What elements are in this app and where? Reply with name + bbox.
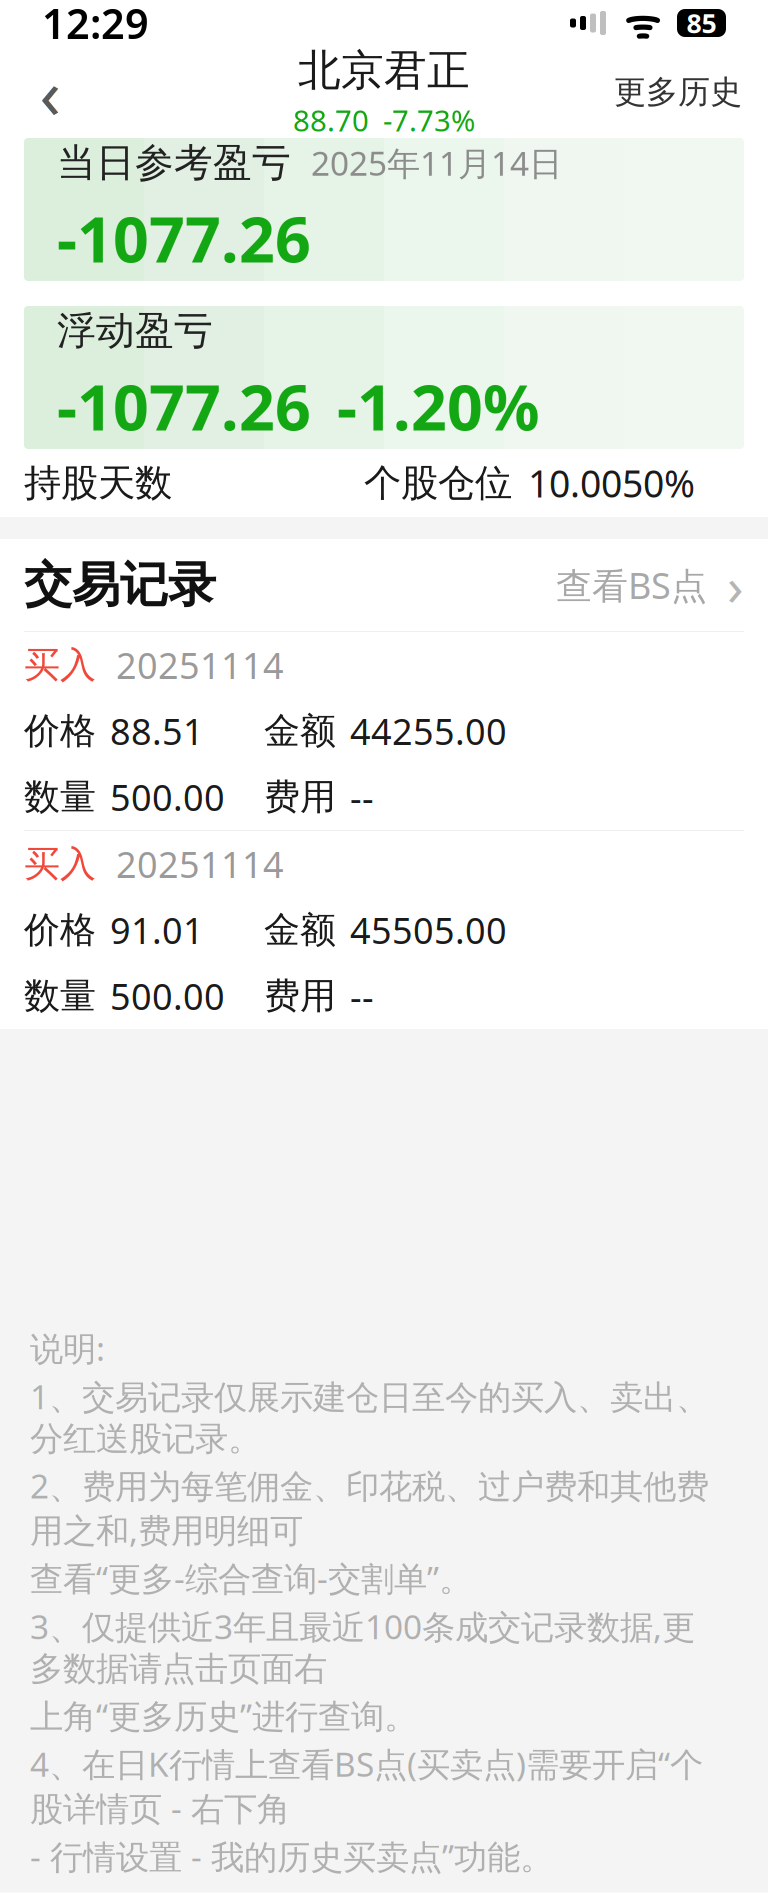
staticText: 数量	[24, 974, 96, 1018]
staticText: 浮动盈亏	[57, 307, 213, 355]
staticText: 更多历史	[614, 72, 742, 112]
staticText: 3、仅提供近3年且最近100条成交记录数据,更多数据请点击页面右	[30, 1604, 695, 1689]
staticText: --	[350, 972, 374, 1020]
staticText: 费用	[264, 775, 336, 819]
staticText: 买入	[24, 643, 96, 687]
staticText: 88.51	[110, 707, 204, 755]
staticText: 金额	[264, 709, 336, 753]
staticText: -1077.26	[57, 365, 311, 448]
staticText: 10.0050%	[528, 458, 695, 508]
staticText: ›	[727, 550, 744, 620]
staticText: 88.70	[293, 101, 369, 140]
staticText: -1077.26	[57, 197, 311, 280]
staticText: -1.20%	[337, 365, 540, 448]
staticText: 北京君正	[298, 44, 470, 97]
staticText: 费用	[264, 974, 336, 1018]
staticText: 买入	[24, 842, 96, 886]
staticText: 当日参考盈亏	[57, 139, 291, 187]
staticText: 数量	[24, 775, 96, 819]
staticText: 44255.00	[350, 707, 507, 755]
staticText: 上角“更多历史”进行查询。	[30, 1693, 417, 1738]
staticText: 91.01	[110, 906, 204, 954]
staticText: 2025年11月14日	[311, 141, 562, 185]
staticText: 20251114	[116, 840, 284, 888]
staticText: ‹	[39, 46, 60, 138]
staticText: 持股天数	[24, 460, 172, 506]
staticText: 45505.00	[350, 906, 507, 954]
staticText: 查看BS点	[556, 561, 707, 609]
button[interactable]: 更多历史	[606, 57, 750, 127]
staticText: 说明:	[30, 1326, 105, 1370]
staticText: 20251114	[116, 641, 284, 689]
button[interactable]: 交易记录	[0, 539, 768, 631]
button[interactable]: 返回	[18, 57, 82, 127]
staticText: 500.00	[110, 972, 225, 1020]
staticText: 价格	[24, 908, 96, 952]
staticText: - 行情设置 - 我的历史买卖点”功能。	[30, 1834, 553, 1879]
staticText: --	[350, 773, 374, 821]
staticText: 金额	[264, 908, 336, 952]
staticText: 500.00	[110, 773, 225, 821]
staticText: 4、在日K行情上查看BS点(买卖点)需要开启“个股详情页 - 右下角	[30, 1742, 703, 1830]
staticText: 个股仓位	[364, 460, 512, 506]
staticText: 交易记录	[24, 555, 216, 614]
staticText: -7.73%	[383, 101, 475, 140]
staticText: 1、交易记录仅展示建仓日至今的买入、卖出、分红送股记录。	[30, 1374, 709, 1459]
staticText: 查看“更多-综合查询-交割单”。	[30, 1556, 472, 1600]
staticText: 价格	[24, 709, 96, 753]
staticText: 85	[686, 5, 716, 41]
staticText: 2、费用为每笔佣金、印花税、过户费和其他费用之和,费用明细可	[30, 1463, 709, 1552]
